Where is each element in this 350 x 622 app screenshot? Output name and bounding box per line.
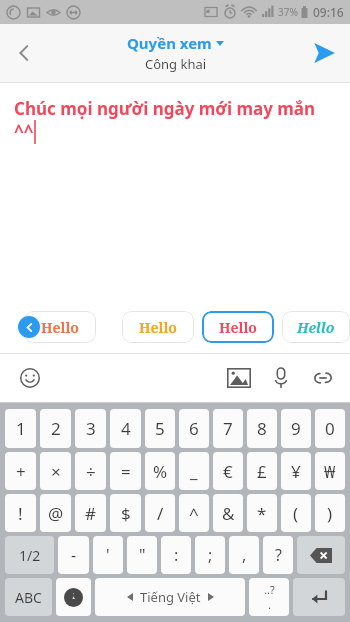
staticText: ^	[189, 502, 199, 525]
button[interactable]: ..?	[249, 578, 289, 616]
staticText: Tiếng Việt	[140, 588, 201, 606]
button[interactable]: ÷	[75, 452, 106, 490]
button[interactable]: 5	[145, 409, 175, 448]
staticText: -	[71, 544, 77, 566]
button[interactable]: Back	[0, 29, 48, 77]
staticText: /	[157, 502, 164, 525]
button[interactable]: Hello	[202, 311, 274, 343]
button[interactable]: -	[58, 536, 89, 574]
button[interactable]: ₩	[315, 452, 345, 490]
button[interactable]: ×	[40, 452, 71, 490]
staticText: ..?	[264, 582, 275, 597]
button[interactable]: €	[213, 452, 243, 490]
button[interactable]: ABC	[5, 578, 52, 616]
button[interactable]: Enter	[293, 578, 345, 616]
staticText: £	[257, 460, 267, 483]
staticText: 6	[189, 417, 199, 440]
button[interactable]: #	[75, 494, 106, 532]
staticText: :	[174, 544, 179, 566]
button[interactable]: 7	[213, 409, 243, 448]
button[interactable]: Send	[298, 27, 350, 79]
staticText: 37%	[278, 5, 298, 19]
button[interactable]: 8	[247, 409, 277, 448]
staticText: 3	[86, 417, 96, 440]
staticText: €	[223, 460, 233, 483]
staticText: Hello	[297, 318, 335, 337]
button[interactable]: 3	[75, 409, 106, 448]
button[interactable]: 0	[315, 409, 345, 448]
button[interactable]: +	[5, 452, 36, 490]
staticText: $	[121, 502, 131, 525]
button[interactable]: Add link	[302, 357, 344, 399]
staticText: _	[190, 460, 198, 483]
staticText: Hello	[139, 318, 177, 337]
staticText: 9	[291, 417, 301, 440]
button[interactable]: Hello	[24, 311, 96, 343]
button[interactable]: "	[127, 536, 157, 574]
button[interactable]: 1	[5, 409, 36, 448]
staticText: ,	[242, 544, 247, 566]
button[interactable]: Previous styles	[18, 316, 40, 338]
button[interactable]: £	[247, 452, 277, 490]
staticText: Chúc mọi người ngày mới may mắn	[14, 97, 316, 120]
staticText: +	[16, 460, 26, 483]
staticText: ₩	[324, 460, 336, 483]
button[interactable]: Space, Tiếng Việt	[95, 578, 245, 616]
button[interactable]: /	[145, 494, 175, 532]
staticText: ×	[51, 460, 61, 483]
staticText: 5	[155, 417, 165, 440]
button[interactable]: 4	[110, 409, 141, 448]
button[interactable]: Hello	[282, 311, 350, 343]
staticText: ^^	[14, 120, 34, 143]
staticText: "	[139, 544, 146, 566]
staticText: )	[327, 502, 333, 525]
staticText: @	[48, 502, 64, 525]
staticText: %	[153, 460, 168, 483]
button[interactable]: @	[40, 494, 71, 532]
staticText: 4	[121, 417, 131, 440]
staticText: Hello	[41, 318, 79, 337]
button[interactable]: ¥	[281, 452, 311, 490]
staticText: Công khai	[145, 55, 207, 73]
staticText: 1	[16, 417, 26, 440]
button[interactable]: )	[315, 494, 345, 532]
button[interactable]: 1/2	[5, 536, 54, 574]
button[interactable]: Add image	[218, 357, 260, 399]
staticText: ;	[208, 544, 213, 566]
button[interactable]: !	[5, 494, 36, 532]
staticText: 0	[325, 417, 335, 440]
button[interactable]: 9	[281, 409, 311, 448]
button[interactable]: (	[281, 494, 311, 532]
button[interactable]: =	[110, 452, 141, 490]
button[interactable]: ?	[263, 536, 293, 574]
staticText: ?	[275, 544, 282, 566]
button[interactable]: $	[110, 494, 141, 532]
button[interactable]: 2	[40, 409, 71, 448]
button[interactable]: '	[93, 536, 123, 574]
button[interactable]: Hello	[122, 311, 194, 343]
button[interactable]: Quyền xem	[127, 33, 224, 73]
button[interactable]: ^	[179, 494, 209, 532]
staticText: 09:16	[313, 4, 344, 20]
staticText: ÷	[86, 460, 96, 483]
button[interactable]: _	[179, 452, 209, 490]
button[interactable]: *	[247, 494, 277, 532]
staticText: #	[85, 502, 96, 525]
staticText: Hello	[219, 318, 257, 337]
staticText: 8	[257, 417, 267, 440]
staticText: 2	[51, 417, 61, 440]
button[interactable]: ;	[195, 536, 225, 574]
button[interactable]: %	[145, 452, 175, 490]
button[interactable]: Emoji	[10, 358, 50, 398]
staticText: 1/2	[19, 546, 41, 565]
button[interactable]: &	[213, 494, 243, 532]
button[interactable]: Backspace	[297, 536, 345, 574]
button[interactable]: Voice input	[260, 357, 302, 399]
staticText: &	[222, 502, 235, 525]
button[interactable]: ,	[229, 536, 259, 574]
staticText: *	[257, 502, 267, 525]
button[interactable]: Emoji keyboard	[56, 578, 91, 616]
button[interactable]: 6	[179, 409, 209, 448]
button[interactable]: :	[161, 536, 191, 574]
staticText: 7	[223, 417, 233, 440]
